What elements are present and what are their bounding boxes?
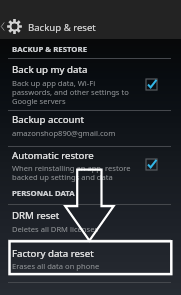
staticText: Back up app data, Wi-Fi passwords, and o… (12, 78, 129, 106)
staticText: DRM reset (12, 209, 60, 222)
staticText: Erases all data on phone (12, 261, 100, 271)
staticText: amazonshop890@gmail.com (12, 128, 116, 138)
staticText: Backup account (12, 113, 85, 126)
staticText: Backup & reset (28, 21, 96, 34)
button[interactable]: Toggle setting (141, 154, 162, 175)
button[interactable] (0, 205, 181, 239)
button[interactable] (0, 62, 181, 110)
button[interactable] (0, 240, 181, 282)
button[interactable] (0, 147, 181, 188)
button[interactable]: Toggle setting (141, 74, 162, 95)
button[interactable] (0, 111, 181, 146)
staticText: Deletes all DRM licenses (12, 224, 99, 234)
staticText: Factory data reset (12, 247, 94, 260)
staticText: Automatic restore (12, 149, 94, 162)
staticText: PERSONAL DATA (12, 188, 75, 199)
staticText: Back up my data (12, 63, 88, 76)
staticText: BACKUP & RESTORE (12, 44, 88, 55)
staticText: When reinstalling an app, restore backed… (12, 163, 131, 182)
button[interactable]: Navigate up to Settings (0, 14, 26, 39)
